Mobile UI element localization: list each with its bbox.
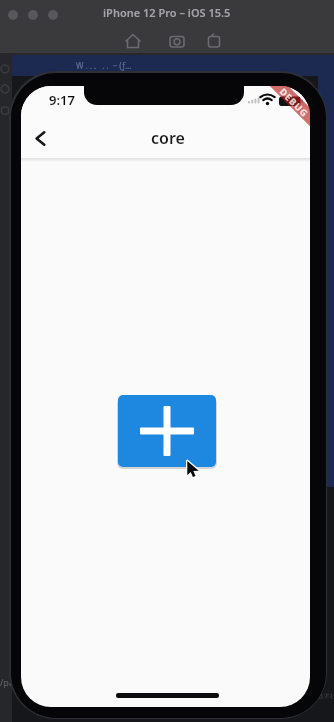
button[interactable] xyxy=(118,395,216,467)
staticText: /pa xyxy=(0,676,14,688)
button[interactable] xyxy=(22,122,58,154)
staticText: W . . . . . ·· (ƒ… xyxy=(76,60,132,71)
staticText: iPhone 12 Pro – iOS 15.5 xyxy=(103,5,231,20)
staticText: 9:17 xyxy=(49,91,75,105)
staticText: DEBUG xyxy=(277,86,310,119)
staticText: 稀土掘金技术社区 xyxy=(294,692,334,700)
staticText: core xyxy=(151,127,185,149)
